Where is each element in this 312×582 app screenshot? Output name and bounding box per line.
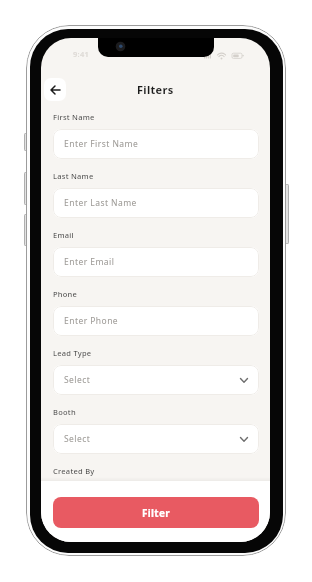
staticText: Enter Last Name: [64, 197, 137, 209]
staticText: Created By: [53, 466, 95, 476]
staticText: Enter First Name: [64, 138, 139, 150]
staticText: Enter Email: [64, 256, 115, 268]
staticText: 9:41: [73, 49, 90, 59]
staticText: Filters: [137, 82, 174, 97]
staticText: Select: [64, 433, 91, 445]
staticText: First Name: [53, 112, 95, 122]
staticText: Lead Type: [53, 348, 92, 358]
button[interactable]: Select: [53, 424, 259, 454]
button[interactable]: Filter: [53, 497, 259, 528]
staticText: Select: [64, 492, 91, 504]
button[interactable]: Enter Phone: [53, 306, 259, 336]
button[interactable]: Enter First Name: [53, 129, 259, 159]
button[interactable]: Select: [53, 483, 259, 513]
staticText: Last Name: [53, 171, 94, 181]
button[interactable]: [44, 78, 66, 101]
button[interactable]: Enter Email: [53, 247, 259, 277]
staticText: Phone: [53, 289, 78, 299]
staticText: Select: [64, 374, 91, 386]
staticText: Email: [53, 230, 74, 240]
button[interactable]: Select: [53, 365, 259, 395]
staticText: Booth: [53, 407, 76, 417]
button[interactable]: Enter Last Name: [53, 188, 259, 218]
staticText: Enter Phone: [64, 315, 119, 327]
staticText: Filter: [142, 506, 171, 520]
